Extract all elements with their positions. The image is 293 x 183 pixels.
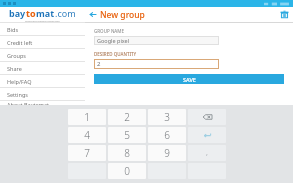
button[interactable]: 7 — [68, 145, 106, 161]
staticText: SAVE — [183, 76, 196, 83]
staticText: 7 — [84, 146, 90, 160]
button[interactable]: 5 — [108, 127, 146, 143]
button[interactable]: 8 — [108, 145, 146, 161]
button[interactable]: 3 — [148, 109, 186, 125]
staticText: , — [206, 148, 208, 158]
staticText: 5 — [124, 128, 130, 142]
staticText: 0 — [124, 164, 130, 178]
staticText: About Baytomat — [7, 101, 50, 105]
button[interactable]: 4 — [68, 127, 106, 143]
button[interactable]: 1 — [68, 109, 106, 125]
button[interactable]: 2 — [94, 59, 219, 69]
button[interactable]: Settings — [0, 88, 85, 101]
staticText: automatic bidding made easy — [25, 19, 60, 22]
button[interactable]: Share — [0, 62, 85, 75]
button[interactable]: 9 — [148, 145, 186, 161]
staticText: New group — [100, 9, 145, 21]
button[interactable]: 6 — [148, 127, 186, 143]
staticText: DESIRED QUANTITY — [94, 51, 137, 57]
button[interactable]: Delete — [275, 7, 293, 22]
button[interactable]: 2 — [108, 109, 146, 125]
staticText: Share — [7, 65, 22, 72]
staticText: Credit left — [7, 39, 33, 46]
staticText: bay — [9, 7, 26, 19]
button[interactable]: 0 — [108, 163, 146, 179]
staticText: o — [30, 7, 36, 19]
staticText: 4 — [84, 128, 90, 142]
staticText: Help/FAQ — [7, 78, 32, 85]
staticText: 8 — [124, 146, 130, 160]
staticText: 9 — [164, 146, 170, 160]
button[interactable]: About Baytomat — [0, 101, 85, 105]
staticText: 3 — [164, 110, 170, 124]
staticText: .com — [55, 7, 76, 19]
staticText: 6 — [164, 128, 170, 142]
button[interactable]: Credit left — [0, 36, 85, 49]
button[interactable]: Backspace — [188, 109, 226, 125]
staticText: Bids — [7, 26, 19, 33]
staticText: Google pixel — [97, 37, 130, 44]
button[interactable]: SAVE — [94, 74, 284, 84]
button[interactable]: Bids — [0, 23, 85, 36]
button[interactable]: Enter — [188, 127, 226, 143]
staticText: GROUP NAME — [94, 28, 124, 34]
staticText: Groups — [7, 52, 26, 59]
button[interactable]: Help/FAQ — [0, 75, 85, 88]
button[interactable]: Google pixel — [94, 36, 219, 45]
staticText: 2 — [124, 110, 130, 124]
button[interactable]: Back — [85, 7, 100, 22]
staticText: Settings — [7, 91, 28, 98]
staticText: 1 — [84, 110, 90, 124]
button[interactable]: Groups — [0, 49, 85, 62]
staticText: t — [26, 7, 30, 19]
staticText: 2 — [97, 60, 101, 68]
staticText: mat — [36, 7, 55, 19]
